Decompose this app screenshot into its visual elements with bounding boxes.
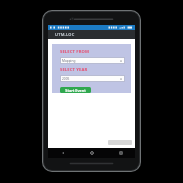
staticText: Start Event — [65, 88, 86, 93]
button[interactable]: Back — [48, 148, 77, 158]
button[interactable]: UTM-LOC — [48, 30, 135, 39]
staticText: SELECT FROM — [60, 49, 89, 55]
staticText: UTM-LOC — [55, 32, 75, 37]
button[interactable]: Mapping — [60, 57, 125, 64]
staticText: SELECT YEAR — [60, 67, 88, 73]
button[interactable]: Recents — [106, 148, 135, 158]
button[interactable]: 2005 — [60, 75, 125, 82]
button[interactable]: Start Event — [60, 87, 91, 93]
staticText: 2005 — [62, 77, 70, 81]
staticText: Mapping — [62, 59, 76, 63]
button[interactable]: Home — [77, 148, 106, 158]
